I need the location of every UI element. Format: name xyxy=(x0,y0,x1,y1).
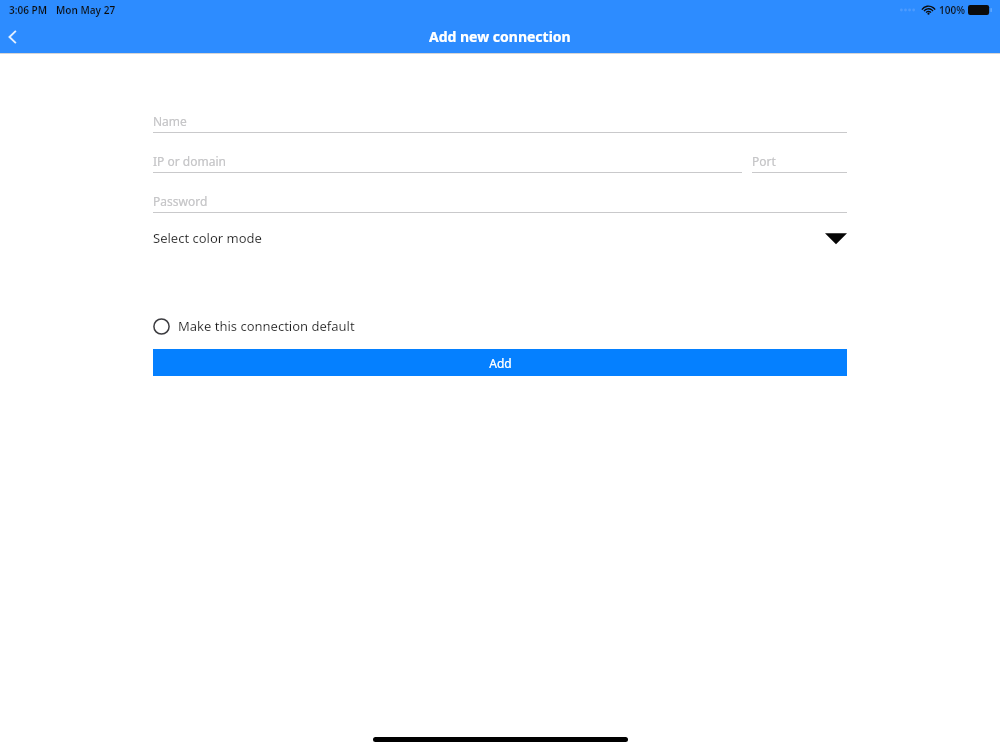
staticText: Add new connection xyxy=(429,27,571,46)
button[interactable]: Name xyxy=(153,109,847,133)
button[interactable]: Password xyxy=(153,189,847,213)
button[interactable]: Back xyxy=(0,20,34,53)
button[interactable]: Port xyxy=(752,149,847,173)
staticText: Select color mode xyxy=(153,229,262,247)
button[interactable]: Add xyxy=(153,349,847,376)
staticText: IP or domain xyxy=(153,153,226,169)
button[interactable]: Select color mode xyxy=(153,224,847,252)
staticText: Name xyxy=(153,113,187,129)
staticText: Mon May 27 xyxy=(56,3,116,17)
staticText: 3:06 PM xyxy=(9,3,47,17)
button[interactable]: IP or domain xyxy=(153,149,742,173)
staticText: Make this connection default xyxy=(178,317,355,335)
staticText: Port xyxy=(752,153,776,169)
button[interactable]: Make this connection default xyxy=(153,314,847,338)
staticText: 100% xyxy=(939,3,965,17)
staticText: Add xyxy=(489,355,512,371)
staticText: Password xyxy=(153,193,208,209)
